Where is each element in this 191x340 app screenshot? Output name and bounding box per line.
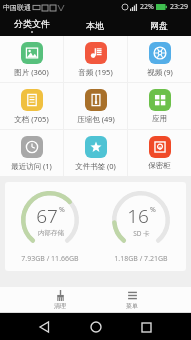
button[interactable]: 清理: [46, 288, 74, 312]
staticText: 23:29: [170, 2, 188, 12]
button[interactable]: 应用: [128, 83, 191, 129]
staticText: 应用: [152, 114, 167, 123]
button[interactable]: 最近访问 (1): [0, 130, 63, 176]
staticText: 内部存储: [38, 229, 64, 237]
staticText: 音频 (195): [78, 67, 113, 77]
staticText: 分类文件: [14, 18, 50, 29]
button[interactable]: 文件书签 (0): [64, 130, 127, 176]
staticText: 1.18GB / 7.21GB: [114, 254, 168, 264]
button[interactable]: Recents: [135, 316, 157, 338]
button[interactable]: 图片 (360): [0, 36, 63, 82]
button[interactable]: 本地: [63, 14, 127, 36]
staticText: 菜单: [126, 302, 138, 310]
button[interactable]: Home: [85, 316, 107, 338]
staticText: 7.93GB / 11.66GB: [21, 254, 79, 264]
staticText: 文件书签 (0): [75, 161, 116, 171]
button[interactable]: 网盘: [127, 14, 191, 36]
staticText: 16: [127, 203, 149, 229]
button[interactable]: 67: [5, 189, 95, 264]
button[interactable]: 音频 (195): [64, 36, 127, 82]
button[interactable]: 视频 (9): [128, 36, 191, 82]
staticText: 最近访问 (1): [11, 161, 52, 171]
button[interactable]: 分类文件: [0, 14, 63, 36]
staticText: 图片 (360): [14, 67, 49, 77]
staticText: 中国联通: [3, 3, 31, 12]
button[interactable]: 压缩包 (49): [64, 83, 127, 129]
staticText: 视频 (9): [147, 67, 173, 77]
staticText: %: [150, 205, 156, 215]
staticText: 清理: [54, 302, 66, 310]
staticText: 本地: [86, 20, 104, 31]
staticText: SD 卡: [133, 229, 150, 238]
button[interactable]: 16: [95, 189, 186, 264]
button[interactable]: 菜单: [118, 288, 146, 312]
staticText: 压缩包 (49): [77, 114, 115, 124]
staticText: 网盘: [150, 20, 168, 31]
button[interactable]: 文档 (705): [0, 83, 63, 129]
staticText: 22%: [140, 2, 154, 12]
button[interactable]: Back: [34, 316, 56, 338]
button[interactable]: 保密柜: [128, 130, 191, 176]
staticText: 文档 (705): [14, 114, 49, 124]
staticText: 67: [36, 203, 58, 229]
staticText: %: [59, 205, 65, 215]
staticText: 保密柜: [148, 161, 171, 170]
